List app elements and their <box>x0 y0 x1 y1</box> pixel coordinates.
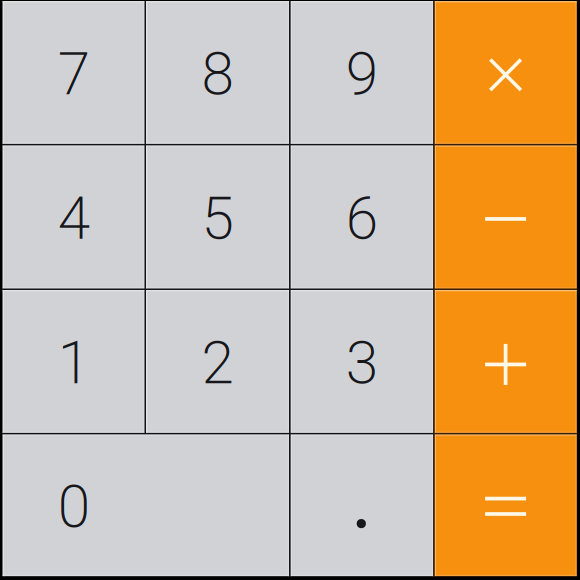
staticText: 3 <box>346 322 378 408</box>
staticText: 8 <box>202 33 234 119</box>
staticText: 1 <box>58 322 90 408</box>
button[interactable]: 9 <box>290 0 434 145</box>
staticText: 0 <box>58 465 90 552</box>
button[interactable]: 7 <box>2 0 145 145</box>
staticText: 6 <box>346 177 378 263</box>
staticText: 2 <box>202 322 234 408</box>
button[interactable]: Subtract <box>434 145 577 289</box>
button[interactable]: Multiply <box>434 0 577 145</box>
button[interactable]: 1 <box>2 289 145 434</box>
button[interactable]: Add <box>434 289 577 434</box>
staticText: 4 <box>58 177 90 263</box>
button[interactable]: Equals <box>434 434 577 577</box>
button[interactable]: 5 <box>145 145 290 289</box>
button[interactable]: 4 <box>2 145 145 289</box>
button[interactable]: 3 <box>290 289 434 434</box>
button[interactable]: 2 <box>145 289 290 434</box>
button[interactable]: 0 <box>2 434 290 577</box>
button[interactable]: 6 <box>290 145 434 289</box>
staticText: 7 <box>58 33 90 119</box>
button[interactable]: 8 <box>145 0 290 145</box>
staticText: 9 <box>346 33 378 119</box>
staticText: 5 <box>202 177 234 263</box>
button[interactable]: Decimal point <box>290 434 434 577</box>
